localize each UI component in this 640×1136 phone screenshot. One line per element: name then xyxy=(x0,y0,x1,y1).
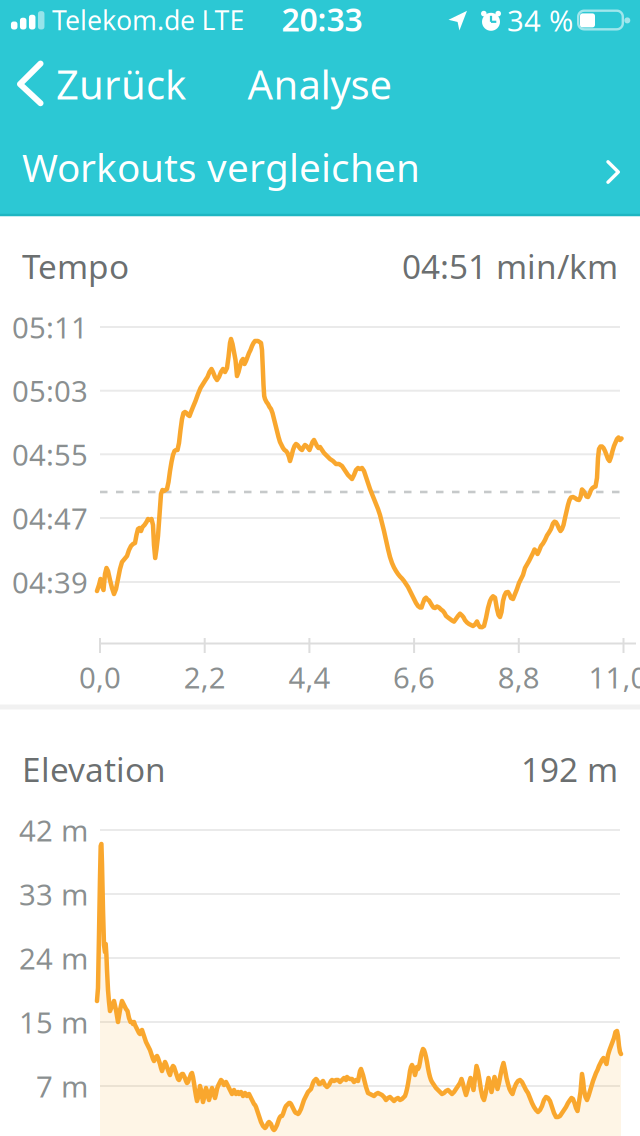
staticText: 33 m xyxy=(19,874,88,913)
staticText: Elevation xyxy=(22,747,166,791)
staticText: 05:03 xyxy=(12,371,88,410)
staticText: 8,8 xyxy=(498,657,540,696)
staticText: 24 m xyxy=(19,938,88,977)
button[interactable]: Workouts vergleichen xyxy=(0,128,640,214)
staticText: 6,6 xyxy=(393,657,435,696)
staticText: 05:11 xyxy=(12,307,88,346)
staticText: 11,0 xyxy=(588,657,640,696)
staticText: 15 m xyxy=(19,1002,88,1041)
staticText: LTE xyxy=(201,2,244,38)
staticText: 192 m xyxy=(521,747,618,791)
staticText: 2,2 xyxy=(184,657,226,696)
staticText: 04:39 xyxy=(12,562,88,601)
staticText: 7 m xyxy=(36,1066,88,1105)
staticText: Telekom.de xyxy=(52,2,195,38)
staticText: Tempo xyxy=(22,244,129,288)
staticText: 4,4 xyxy=(288,657,330,696)
staticText: 04:51 min/km xyxy=(402,244,618,288)
staticText: 34 % xyxy=(507,0,573,39)
staticText: Analyse xyxy=(247,57,392,110)
staticText: Zurück xyxy=(56,57,186,110)
button[interactable]: Zurück xyxy=(0,55,180,115)
staticText: 04:47 xyxy=(12,498,88,537)
staticText: 42 m xyxy=(19,810,88,849)
staticText: 0,0 xyxy=(79,657,121,696)
staticText: 04:55 xyxy=(12,435,88,474)
staticText: Workouts vergleichen xyxy=(22,141,420,193)
staticText: 20:33 xyxy=(281,0,362,40)
